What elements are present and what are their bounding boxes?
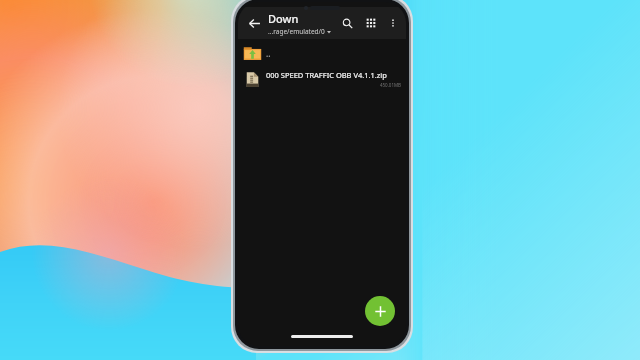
button[interactable]: More options — [384, 14, 402, 32]
button[interactable]: Search — [337, 13, 357, 33]
button[interactable]: 000 SPEED TRAFFIC OBB V4.1.1.zip — [238, 66, 406, 92]
button[interactable]: Grid view — [361, 13, 381, 33]
staticText: .. — [266, 48, 271, 59]
staticText: ...rage/emulated/0 — [268, 27, 325, 36]
button[interactable]: Add — [365, 296, 395, 326]
button[interactable]: .. — [238, 41, 406, 66]
staticText: 000 SPEED TRAFFIC OBB V4.1.1.zip — [266, 70, 387, 80]
staticText: Down — [268, 11, 299, 26]
button[interactable]: Back — [243, 12, 265, 34]
staticText: 450.01MB — [266, 82, 401, 88]
